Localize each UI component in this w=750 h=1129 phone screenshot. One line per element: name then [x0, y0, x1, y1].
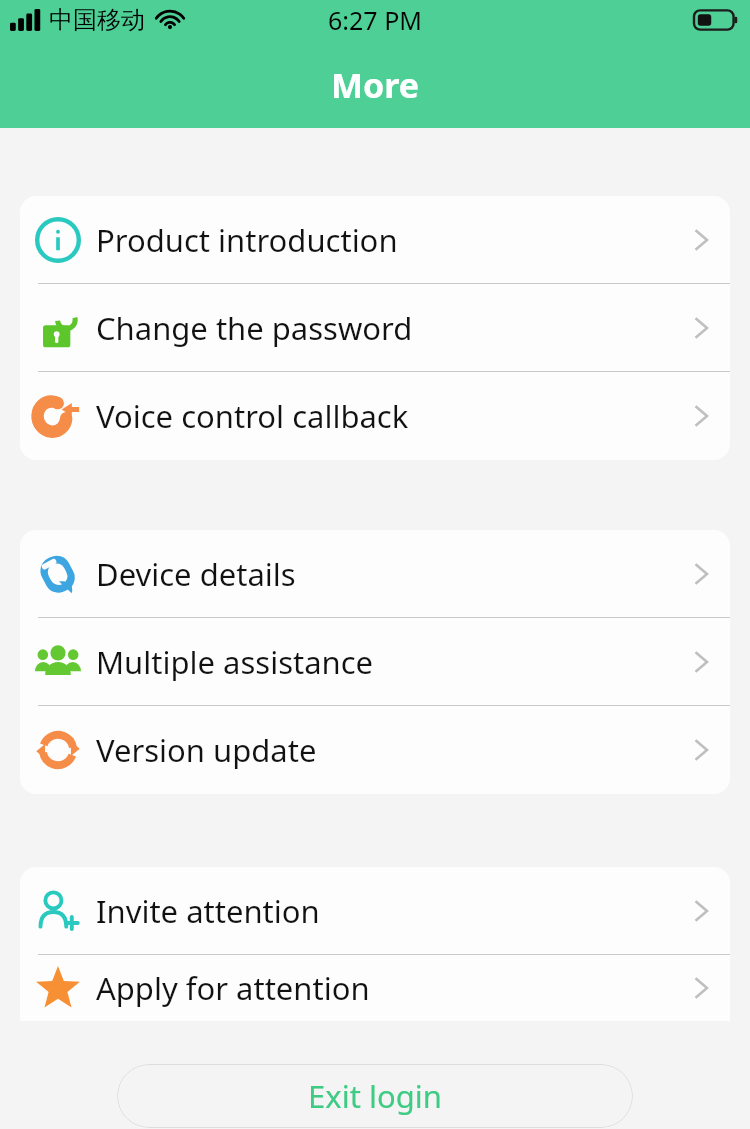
staticText: More — [331, 62, 420, 108]
staticText: Apply for attention — [96, 967, 672, 1009]
other: Version update — [35, 727, 81, 773]
button[interactable]: Exit login — [117, 1064, 633, 1128]
staticText: 中国移动 — [49, 5, 145, 35]
staticText: Product introduction — [96, 219, 672, 261]
other: Product introduction — [35, 217, 81, 263]
button[interactable]: Voice control callback — [20, 372, 730, 460]
staticText: Change the password — [96, 307, 672, 349]
staticText: Multiple assistance — [96, 641, 672, 683]
other: Device details — [35, 551, 81, 597]
button[interactable]: Multiple assistance — [20, 618, 730, 706]
staticText: Device details — [96, 553, 672, 595]
button[interactable]: Invite attention — [20, 867, 730, 955]
button[interactable]: Apply for attention — [20, 955, 730, 1021]
staticText: Exit login — [308, 1075, 442, 1117]
other: Apply for attention — [35, 965, 81, 1011]
other: Multiple assistance — [35, 639, 81, 685]
staticText: Voice control callback — [96, 395, 672, 437]
staticText: Version update — [96, 729, 672, 771]
button[interactable]: Device details — [20, 530, 730, 618]
button[interactable]: Version update — [20, 706, 730, 794]
staticText: 6:27 PM — [328, 3, 422, 37]
button[interactable]: Change the password — [20, 284, 730, 372]
other: Invite attention — [35, 888, 81, 934]
other: Change the password — [36, 306, 80, 350]
other: Voice control callback — [35, 393, 81, 439]
button[interactable]: Product introduction — [20, 196, 730, 284]
staticText: Invite attention — [96, 890, 672, 932]
